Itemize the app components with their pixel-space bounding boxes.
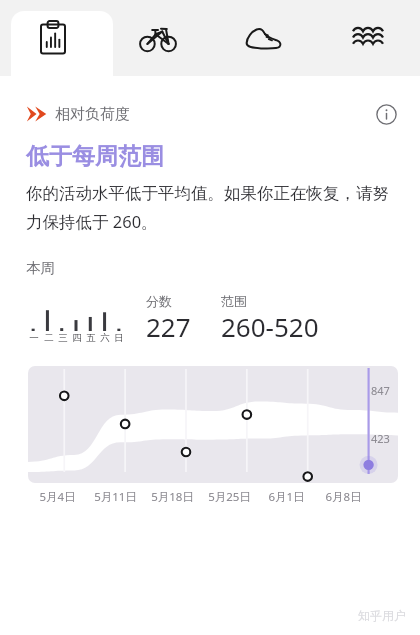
staticText: 你的活动水平低于平均值。如果你正在恢复，请努力保持低于 260。 xyxy=(26,183,396,233)
button[interactable]: 847 xyxy=(28,366,398,483)
staticText: 5月25日 xyxy=(208,489,251,505)
staticText: 6月8日 xyxy=(325,489,362,505)
staticText: 227 xyxy=(146,309,191,344)
staticText: 五 xyxy=(86,332,96,344)
staticText: 六 xyxy=(100,332,110,344)
staticText: 5月18日 xyxy=(151,489,194,505)
staticText: 三 xyxy=(58,332,68,344)
button[interactable]: Information xyxy=(370,98,402,130)
staticText: 260-520 xyxy=(221,309,319,344)
staticText: 日 xyxy=(114,332,124,344)
staticText: 相对负荷度 xyxy=(55,105,130,124)
staticText: 本周 xyxy=(26,259,55,277)
button[interactable]: Running xyxy=(210,0,315,76)
staticText: 知乎用户 xyxy=(358,608,406,623)
staticText: 二 xyxy=(44,332,54,344)
staticText: 5月11日 xyxy=(94,489,137,505)
button[interactable]: Cycling xyxy=(105,0,210,76)
staticText: 6月1日 xyxy=(268,489,305,505)
staticText: 四 xyxy=(72,332,82,344)
staticText: 5月4日 xyxy=(39,489,76,505)
staticText: 一 xyxy=(29,332,39,344)
button[interactable]: Activity summary xyxy=(0,0,105,76)
staticText: 低于每周范围 xyxy=(26,142,164,171)
staticText: 分数 xyxy=(146,293,172,309)
staticText: 范围 xyxy=(221,293,247,309)
staticText: 423 xyxy=(371,431,390,446)
staticText: 847 xyxy=(371,383,390,398)
button[interactable]: Swimming xyxy=(315,0,420,76)
